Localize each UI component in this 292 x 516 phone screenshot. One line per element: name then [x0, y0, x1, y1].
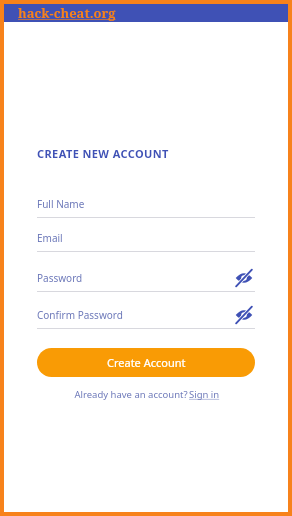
staticText: Confirm Password: [37, 308, 233, 322]
staticText: Email: [37, 231, 255, 245]
staticText: Already have an account?: [73, 388, 189, 401]
staticText: hack-cheat.org: [18, 4, 116, 22]
staticText: Full Name: [37, 197, 255, 211]
button[interactable]: hack-cheat.org: [4, 4, 288, 22]
staticText: Password: [37, 271, 233, 285]
button[interactable]: Create Account: [37, 348, 255, 377]
staticText: Create Account: [107, 355, 186, 370]
staticText: Sign in: [189, 388, 220, 401]
button[interactable]: Sign in: [189, 388, 220, 401]
button[interactable]: Toggle password visibility: [233, 305, 255, 325]
staticText: CREATE NEW ACCOUNT: [37, 146, 169, 161]
button[interactable]: Toggle password visibility: [233, 268, 255, 288]
